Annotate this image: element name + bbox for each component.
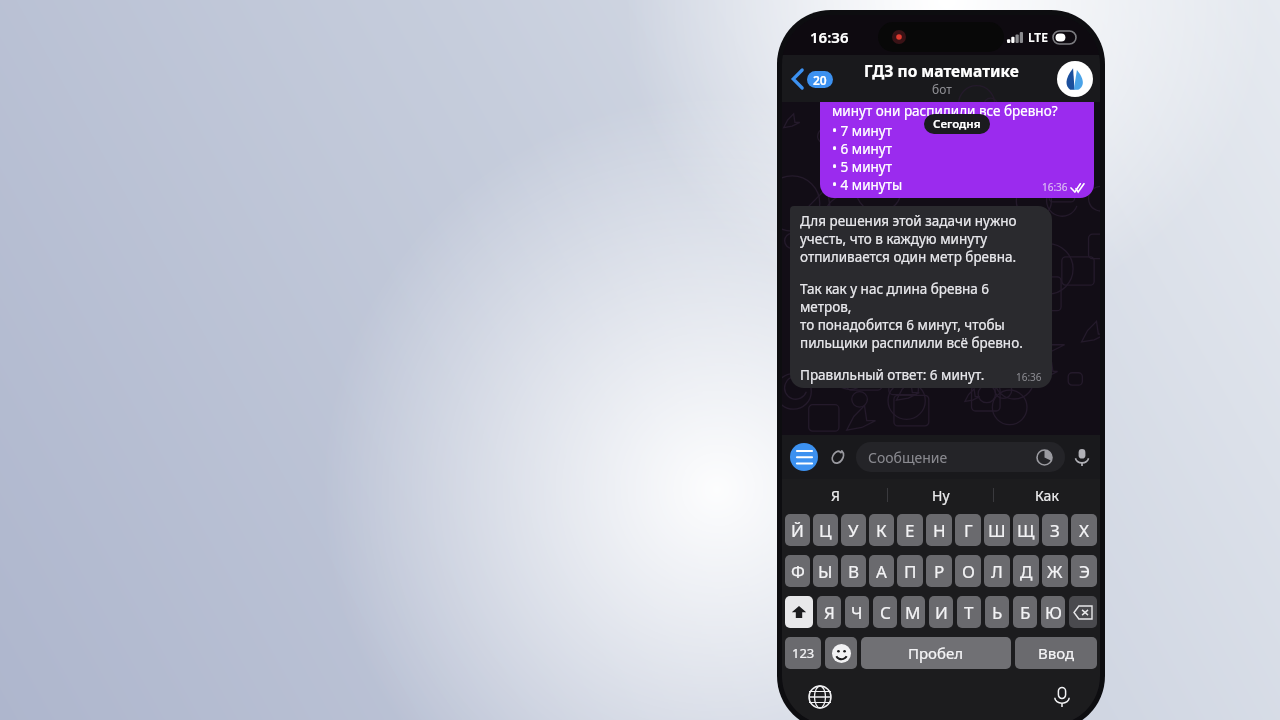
button[interactable]: Г [955,514,981,546]
staticText: В [848,560,860,583]
staticText: К [876,519,887,542]
staticText: ГДЗ по математике [864,60,1019,81]
staticText: Я [824,601,835,624]
button[interactable]: Voice message [1072,447,1092,467]
button[interactable]: О [955,555,981,587]
staticText: Е [905,519,915,542]
button[interactable]: П [897,555,923,587]
staticText: 16:36 [1042,180,1068,194]
button[interactable]: И [929,596,953,628]
staticText: учесть, что в каждую минуту [800,230,988,248]
staticText: пильщики распилили всё бревно. [800,334,1023,352]
staticText: Сообщение [868,448,948,467]
staticText: 16:36 [1016,370,1042,384]
button[interactable]: Т [957,596,981,628]
button[interactable]: Х [1071,514,1097,546]
staticText: Ш [988,519,1006,542]
button[interactable]: Э [1071,555,1097,587]
staticText: Для решения этой задачи нужно [800,212,1017,230]
button[interactable]: 123 [785,637,821,669]
staticText: О [962,560,975,583]
button[interactable]: В [841,555,866,587]
button[interactable]: З [1042,514,1068,546]
button[interactable]: Сегодня [924,114,990,134]
staticText: Б [1020,601,1031,624]
staticText: LTE [1028,29,1048,45]
staticText: Я [831,486,840,505]
button[interactable]: Е [897,514,923,546]
staticText: Н [933,519,946,542]
staticText: Ж [1047,560,1063,583]
staticText: отпиливается один метр бревна. [800,248,1017,266]
staticText: Ф [791,560,805,583]
staticText: С [880,601,891,624]
button[interactable]: Я [817,596,841,628]
button[interactable]: Menu [790,443,818,471]
staticText: У [848,519,859,542]
button[interactable]: Ю [1041,596,1065,628]
staticText: Ч [851,601,863,624]
staticText: то понадобится 6 минут, чтобы [800,316,1005,334]
button[interactable]: С [873,596,897,628]
button[interactable]: Ш [984,514,1010,546]
staticText: 123 [792,644,815,662]
staticText: бот [932,81,952,97]
button[interactable]: Й [785,514,810,546]
staticText: Пробел [908,643,964,663]
button[interactable]: Ь [985,596,1009,628]
staticText: П [904,560,917,583]
button[interactable]: Shift [785,596,813,628]
button[interactable]: Ну [888,479,994,511]
button[interactable]: Б [1013,596,1037,628]
button[interactable]: Пробел [861,637,1011,669]
button[interactable]: Dictation [1050,685,1074,709]
staticText: • 7 минут [832,122,893,140]
staticText: Так как у нас длина бревна 6 метров, [800,280,1042,316]
button[interactable]: Ц [813,514,838,546]
button[interactable]: Attach [826,446,848,468]
staticText: Ну [932,486,950,505]
staticText: Правильный ответ: 6 минут. [800,366,985,384]
staticText: Й [791,519,804,542]
button[interactable]: Emoji [825,637,857,669]
staticText: Д [1020,560,1033,583]
button[interactable]: Н [926,514,952,546]
button[interactable]: минут они распилили все бревно? [820,102,1094,198]
button[interactable]: Л [984,555,1010,587]
staticText: • 6 минут [832,140,893,158]
staticText: Как [1035,486,1059,505]
button[interactable]: Щ [1013,514,1039,546]
staticText: Х [1079,519,1089,542]
staticText: • 5 минут [832,158,893,176]
button[interactable]: Как [994,479,1100,511]
button[interactable]: М [901,596,925,628]
staticText: Г [964,519,973,542]
button[interactable]: Ч [845,596,869,628]
staticText: 20 [813,72,827,88]
button[interactable]: Ж [1042,555,1068,587]
button[interactable]: Сообщение [856,442,1065,472]
button[interactable]: Profile [1057,61,1093,97]
button[interactable]: К [869,514,894,546]
staticText: Ь [992,601,1003,624]
staticText: Р [934,560,945,583]
button[interactable]: Ф [785,555,810,587]
button[interactable]: Backspace [1069,596,1097,628]
button[interactable]: Д [1013,555,1039,587]
staticText: Т [964,601,974,624]
button[interactable]: Ы [813,555,838,587]
staticText: Щ [1017,519,1035,542]
staticText: Л [991,560,1003,583]
button[interactable]: Back [790,67,835,91]
staticText: минут они распилили все бревно? [832,102,1058,120]
button[interactable]: Я [782,479,888,511]
staticText: Ы [818,560,833,583]
button[interactable]: Ввод [1015,637,1097,669]
button[interactable]: Language [808,685,832,709]
button[interactable]: У [841,514,866,546]
button[interactable]: Для решения этой задачи нужно [790,206,1052,388]
button[interactable]: А [869,555,894,587]
button[interactable]: Р [926,555,952,587]
staticText: З [1050,519,1060,542]
staticText: И [935,601,948,624]
